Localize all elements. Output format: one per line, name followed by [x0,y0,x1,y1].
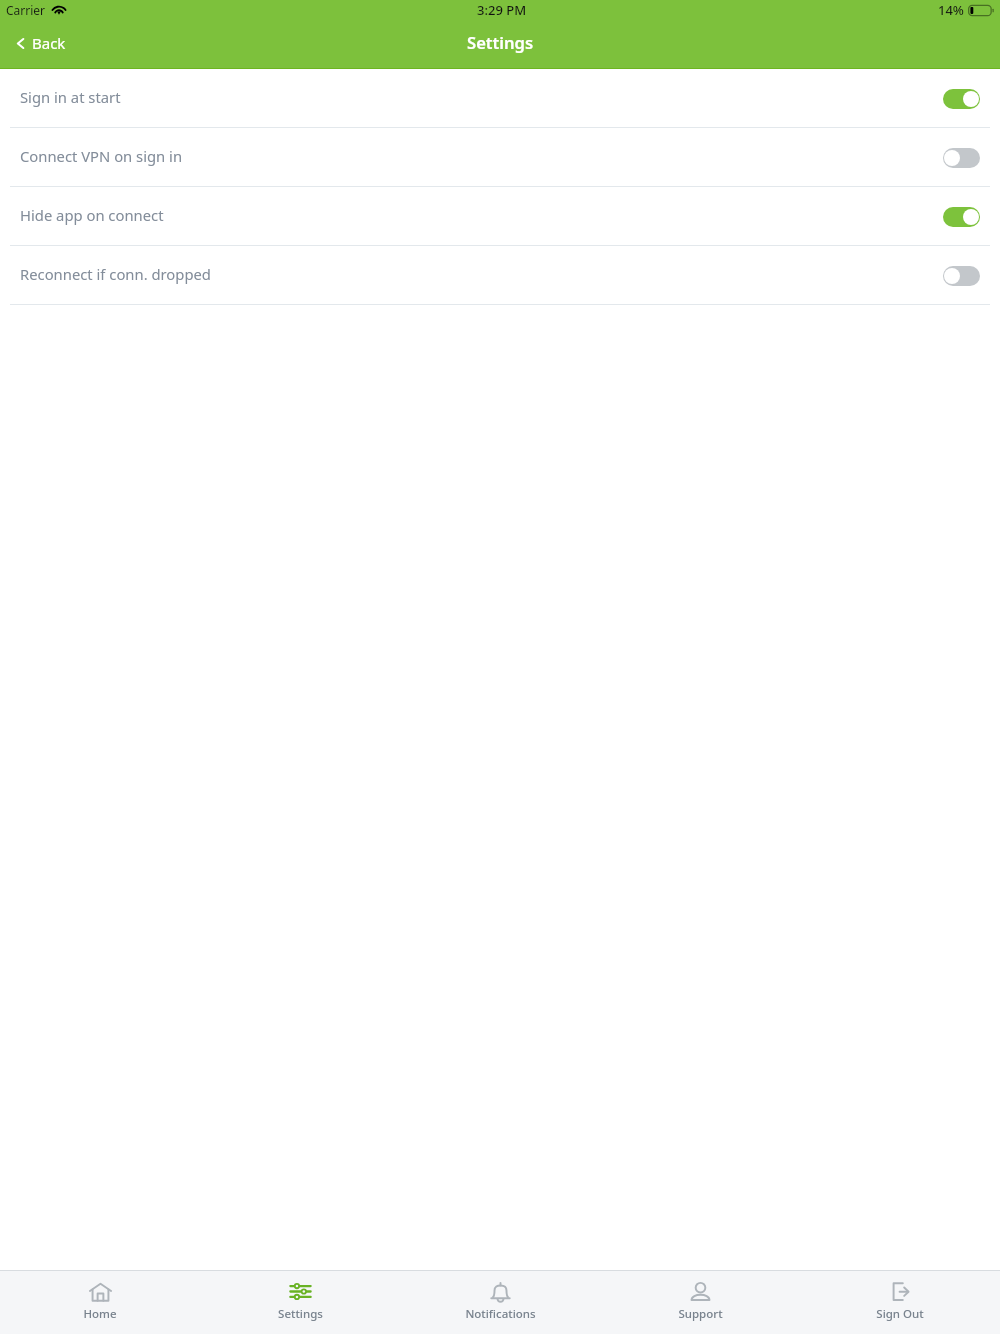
button[interactable]: Sign Out [800,1271,1000,1334]
staticText: Hide app on connect [20,205,943,225]
button[interactable]: Toggle off [943,266,980,286]
button[interactable]: Reconnect if conn. dropped [0,246,1000,305]
staticText: Back [32,33,66,53]
staticText: Sign Out [876,1306,924,1322]
staticText: Home [83,1306,117,1322]
button[interactable]: Connect VPN on sign in [0,128,1000,187]
staticText: Settings [467,31,534,54]
staticText: Settings [278,1306,323,1322]
button[interactable]: Toggle on [943,207,980,227]
staticText: Support [678,1306,723,1322]
button[interactable]: Settings [200,1271,400,1334]
button[interactable]: Sign in at start [0,69,1000,128]
button[interactable]: Toggle off [943,148,980,168]
button[interactable]: Back [0,26,80,60]
button[interactable]: Home [0,1271,200,1334]
staticText: Sign in at start [20,87,943,107]
staticText: Carrier [6,2,46,18]
staticText: Connect VPN on sign in [20,146,943,166]
button[interactable]: Notifications [400,1271,600,1334]
staticText: Reconnect if conn. dropped [20,264,943,284]
button[interactable]: Hide app on connect [0,187,1000,246]
button[interactable]: Support [600,1271,800,1334]
staticText: 14% [938,1,964,19]
staticText: 3:29 PM [477,1,527,19]
button[interactable]: Toggle on [943,89,980,109]
staticText: Notifications [465,1306,536,1322]
